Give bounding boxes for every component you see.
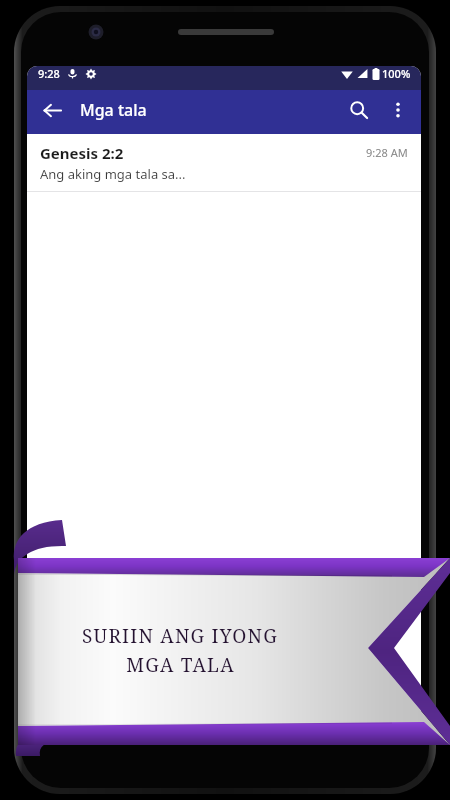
staticText: 9:28	[38, 66, 60, 81]
button[interactable]: Search	[339, 90, 379, 130]
button[interactable]: SURIIN ANG IYONG	[30, 610, 330, 690]
staticText: Ang aking mga tala sa...	[40, 165, 186, 183]
staticText: Mga tala	[80, 99, 147, 121]
staticText: 100%	[382, 66, 411, 81]
button[interactable]: Genesis 2:2	[27, 134, 421, 192]
staticText: 9:28 AM	[366, 145, 408, 160]
button[interactable]: Back	[33, 91, 71, 129]
staticText: MGA TALA	[126, 652, 235, 678]
button[interactable]: More options	[379, 91, 417, 129]
staticText: Genesis 2:2	[40, 143, 124, 163]
staticText: SURIIN ANG IYONG	[82, 623, 278, 649]
